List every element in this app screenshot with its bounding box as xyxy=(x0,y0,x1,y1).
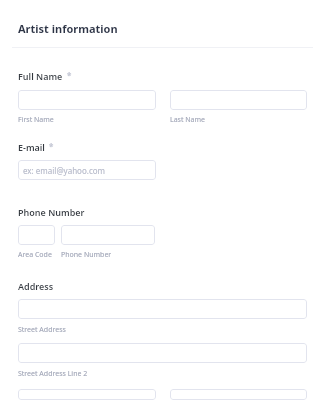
staticText: Last Name xyxy=(170,115,206,125)
button[interactable]: Phone Number xyxy=(61,225,155,245)
staticText: Phone Number xyxy=(18,206,85,218)
staticText: First Name xyxy=(18,115,54,125)
staticText: Phone Number xyxy=(61,250,112,260)
button[interactable]: Street Address Line 2 xyxy=(18,343,307,363)
staticText: Address xyxy=(18,280,54,292)
staticText: Full Name xyxy=(18,70,63,82)
staticText: Street Address xyxy=(18,325,66,335)
staticText: * xyxy=(49,141,54,152)
button[interactable]: Street Address xyxy=(18,299,307,319)
button[interactable]: Last Name xyxy=(170,90,307,110)
button[interactable]: City xyxy=(18,389,156,400)
staticText: ex: email@yahoo.com xyxy=(23,165,106,176)
staticText: Street Address Line 2 xyxy=(18,369,88,379)
button[interactable]: E-mail xyxy=(18,160,156,180)
staticText: Area Code xyxy=(18,250,52,260)
button[interactable]: State / Province xyxy=(170,389,307,400)
staticText: Artist information xyxy=(18,21,118,36)
staticText: * xyxy=(67,70,72,81)
staticText: E-mail xyxy=(18,141,45,153)
button[interactable]: Area Code xyxy=(18,225,55,245)
button[interactable]: First Name xyxy=(18,90,156,110)
